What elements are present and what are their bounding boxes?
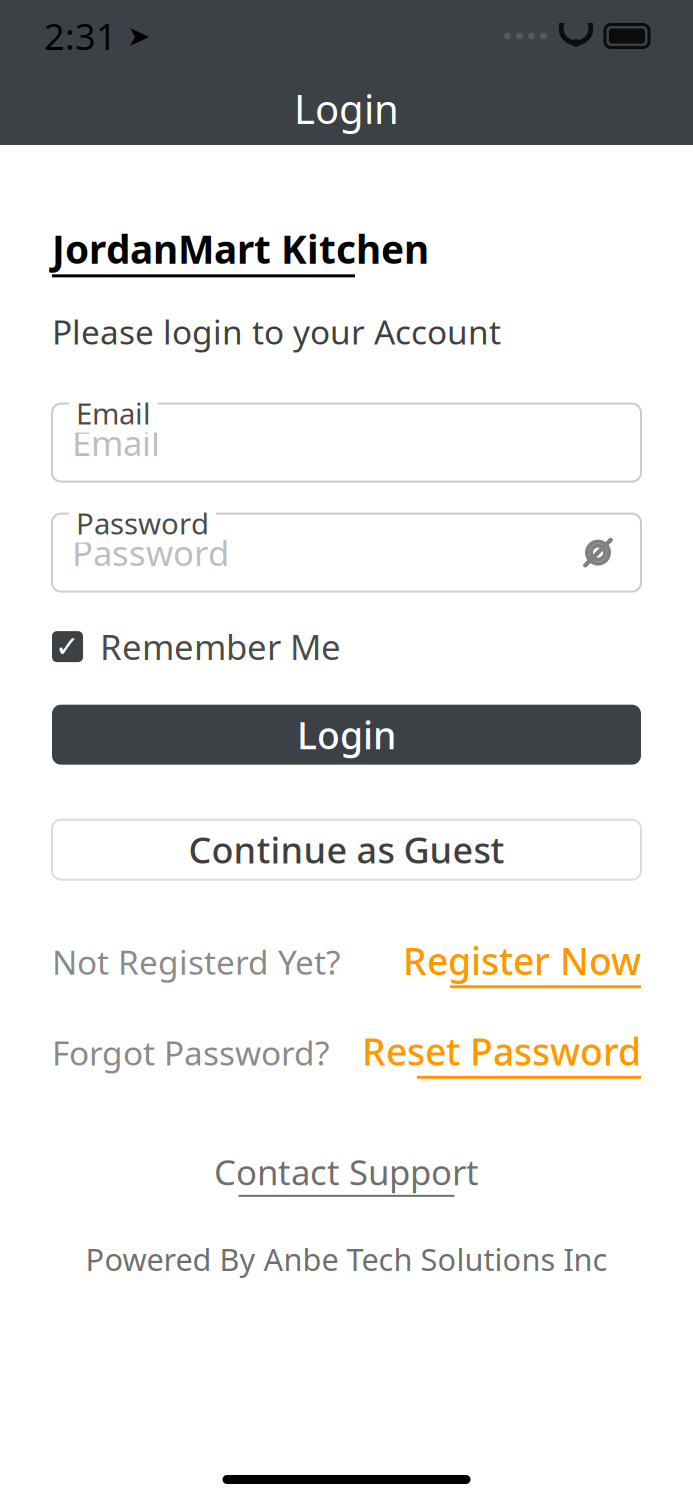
staticText: Password: [72, 530, 229, 576]
staticText: Powered By Anbe Tech Solutions Inc: [85, 1239, 607, 1279]
staticText: Email: [76, 394, 151, 433]
staticText: Remember Me: [100, 624, 341, 670]
staticText: ➤: [117, 20, 150, 52]
staticText: Forgot Password?: [52, 1030, 329, 1075]
staticText: Password: [76, 504, 209, 543]
button[interactable]: Reset Password: [362, 1026, 641, 1079]
staticText: 2:31: [44, 12, 117, 60]
button[interactable]: Login: [52, 705, 641, 765]
staticText: JordanMart Kitchen: [52, 223, 429, 274]
staticText: ✓: [55, 630, 80, 663]
staticText: Please login to your Account: [52, 309, 501, 354]
staticText: Not Registerd Yet?: [52, 940, 340, 984]
button[interactable]: Continue as Guest: [52, 820, 641, 880]
staticText: Register Now: [403, 936, 641, 985]
button[interactable]: ✓: [52, 624, 641, 670]
staticText: Continue as Guest: [188, 826, 504, 873]
button[interactable]: Contact Support: [214, 1149, 479, 1197]
staticText: Contact Support: [214, 1149, 479, 1195]
button[interactable]: Show password: [575, 530, 621, 576]
staticText: Login: [297, 710, 396, 759]
staticText: Login: [294, 82, 399, 135]
staticText: Reset Password: [362, 1026, 641, 1076]
staticText: Email: [72, 420, 160, 466]
button[interactable]: Register Now: [403, 936, 641, 988]
